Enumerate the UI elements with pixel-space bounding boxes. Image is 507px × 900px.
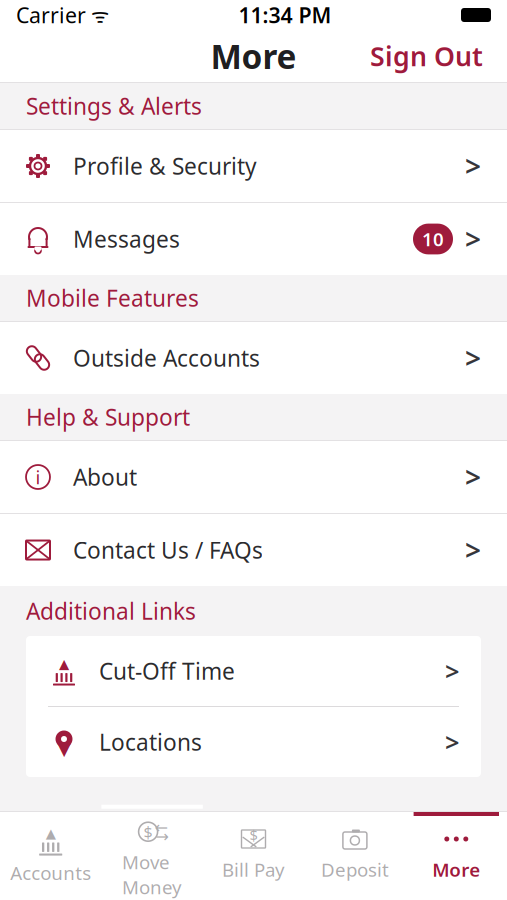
staticText: More <box>432 857 480 882</box>
staticText: ▼ <box>57 739 70 759</box>
staticText: Contact Us / FAQs <box>73 535 263 565</box>
staticText: ▲ <box>46 826 56 841</box>
staticText: More <box>210 34 296 78</box>
staticText: 10 <box>422 227 444 251</box>
staticText: Settings & Alerts <box>26 91 202 121</box>
staticText: Sign Out <box>370 38 483 74</box>
staticText: Profile & Security <box>73 151 257 181</box>
staticText: Accounts <box>10 860 91 885</box>
staticText: Messages <box>73 224 180 254</box>
staticText: Help & Support <box>26 402 190 432</box>
button[interactable]: Deposit <box>304 812 406 900</box>
staticText: $ <box>144 821 153 842</box>
button[interactable]: Profile & Security <box>0 130 507 202</box>
staticText: > <box>445 725 459 759</box>
staticText: > <box>465 339 481 377</box>
staticText: Deposit <box>321 857 389 882</box>
staticText: 11:34 PM <box>238 1 331 29</box>
staticText: $ <box>249 825 257 845</box>
staticText: Locations <box>99 727 202 757</box>
button[interactable]: Outside Accounts <box>0 322 507 394</box>
staticText: Mobile Features <box>26 283 199 313</box>
staticText: > <box>465 147 481 185</box>
button[interactable]: ▼ <box>26 707 481 777</box>
staticText: Additional Links <box>26 596 196 626</box>
button[interactable]: ▲ <box>26 636 481 706</box>
staticText: ▲ <box>59 656 69 671</box>
button[interactable]: $ <box>203 812 304 900</box>
staticText: > <box>445 654 459 688</box>
button[interactable]: ▲ <box>0 812 101 900</box>
staticText: i <box>35 465 40 489</box>
button[interactable]: More <box>406 812 507 900</box>
staticText: > <box>465 220 481 258</box>
button[interactable]: Sign Out <box>356 30 497 82</box>
staticText: Move Money <box>122 850 182 899</box>
button[interactable]: Messages <box>0 203 507 275</box>
staticText: > <box>465 531 481 569</box>
staticText: > <box>465 458 481 496</box>
staticText: Carrier <box>16 1 86 29</box>
button[interactable]: Contact Us / FAQs <box>0 514 507 586</box>
staticText: About <box>73 462 137 492</box>
staticText: Bill Pay <box>222 857 285 882</box>
staticText: Outside Accounts <box>73 343 260 373</box>
staticText: Cut-Off Time <box>99 656 235 686</box>
staticText: ᯤ <box>86 2 109 28</box>
staticText: ← <box>155 819 168 837</box>
staticText: → <box>156 828 169 846</box>
button[interactable]: $ <box>101 812 203 900</box>
button[interactable]: i <box>0 441 507 513</box>
